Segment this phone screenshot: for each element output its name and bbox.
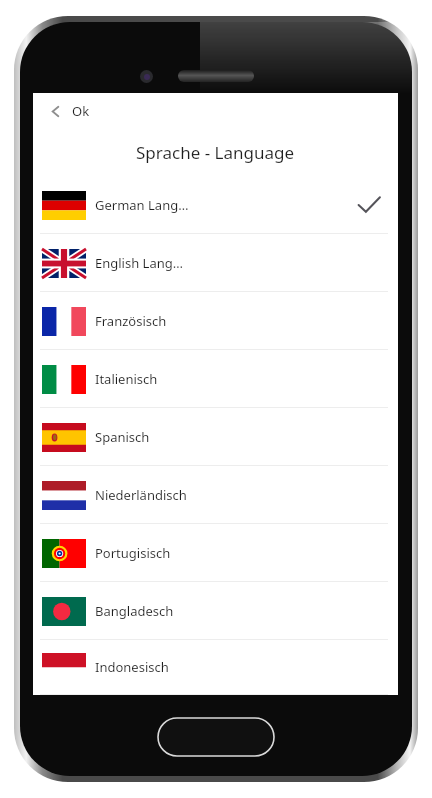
button[interactable]: Italienisch [33,350,398,408]
staticText: Italienisch [95,370,158,388]
staticText: Spanisch [95,428,150,446]
button[interactable]: Portugisisch [33,524,398,582]
button[interactable]: Bangladesch [33,582,398,640]
staticText: German Lang… [95,196,189,214]
staticText: Niederländisch [95,486,187,504]
staticText: Bangladesch [95,602,174,620]
button[interactable]: English Lang… [33,234,398,292]
button[interactable]: Französisch [33,292,398,350]
button[interactable]: Ok [33,93,398,129]
staticText: Französisch [95,312,167,330]
staticText: Portugisisch [95,544,171,562]
staticText: English Lang… [95,254,184,272]
button[interactable]: Indonesisch [33,640,398,695]
button[interactable]: Niederländisch [33,466,398,524]
button[interactable]: German Lang… [33,176,398,234]
button[interactable]: Spanisch [33,408,398,466]
staticText: Indonesisch [95,658,169,676]
staticText: Ok [72,102,90,120]
staticText: Sprache - Language [136,141,295,164]
other: Selected [356,192,382,218]
